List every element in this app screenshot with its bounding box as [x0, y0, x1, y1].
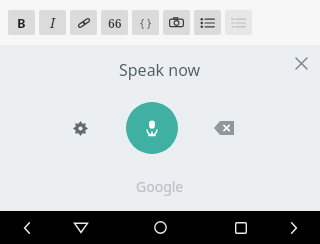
button[interactable]: Settings	[63, 111, 97, 145]
button[interactable]: Close	[287, 49, 315, 77]
button[interactable]: Bulleted list	[194, 10, 221, 35]
button[interactable]: Previous	[0, 211, 54, 244]
button[interactable]: Quote	[101, 10, 128, 35]
button[interactable]: Link	[70, 10, 97, 35]
button[interactable]: Hide keyboard	[54, 211, 107, 244]
button[interactable]: Bold	[8, 10, 35, 35]
staticText: 66	[108, 15, 122, 31]
button[interactable]: Code	[132, 10, 159, 35]
button[interactable]: Numbered list	[225, 10, 252, 35]
button[interactable]: Italic	[39, 10, 66, 35]
button[interactable]: Backspace	[207, 111, 241, 145]
staticText: Speak now	[119, 59, 201, 81]
staticText: B	[17, 14, 26, 32]
button[interactable]: Microphone	[126, 102, 178, 154]
button[interactable]: Home	[107, 211, 214, 244]
staticText: I	[50, 13, 56, 32]
staticText: Google	[136, 177, 184, 196]
button[interactable]: Insert image	[163, 10, 190, 35]
button[interactable]: Next	[267, 211, 320, 244]
button[interactable]: Recents	[214, 211, 267, 244]
staticText: { }	[140, 15, 152, 30]
